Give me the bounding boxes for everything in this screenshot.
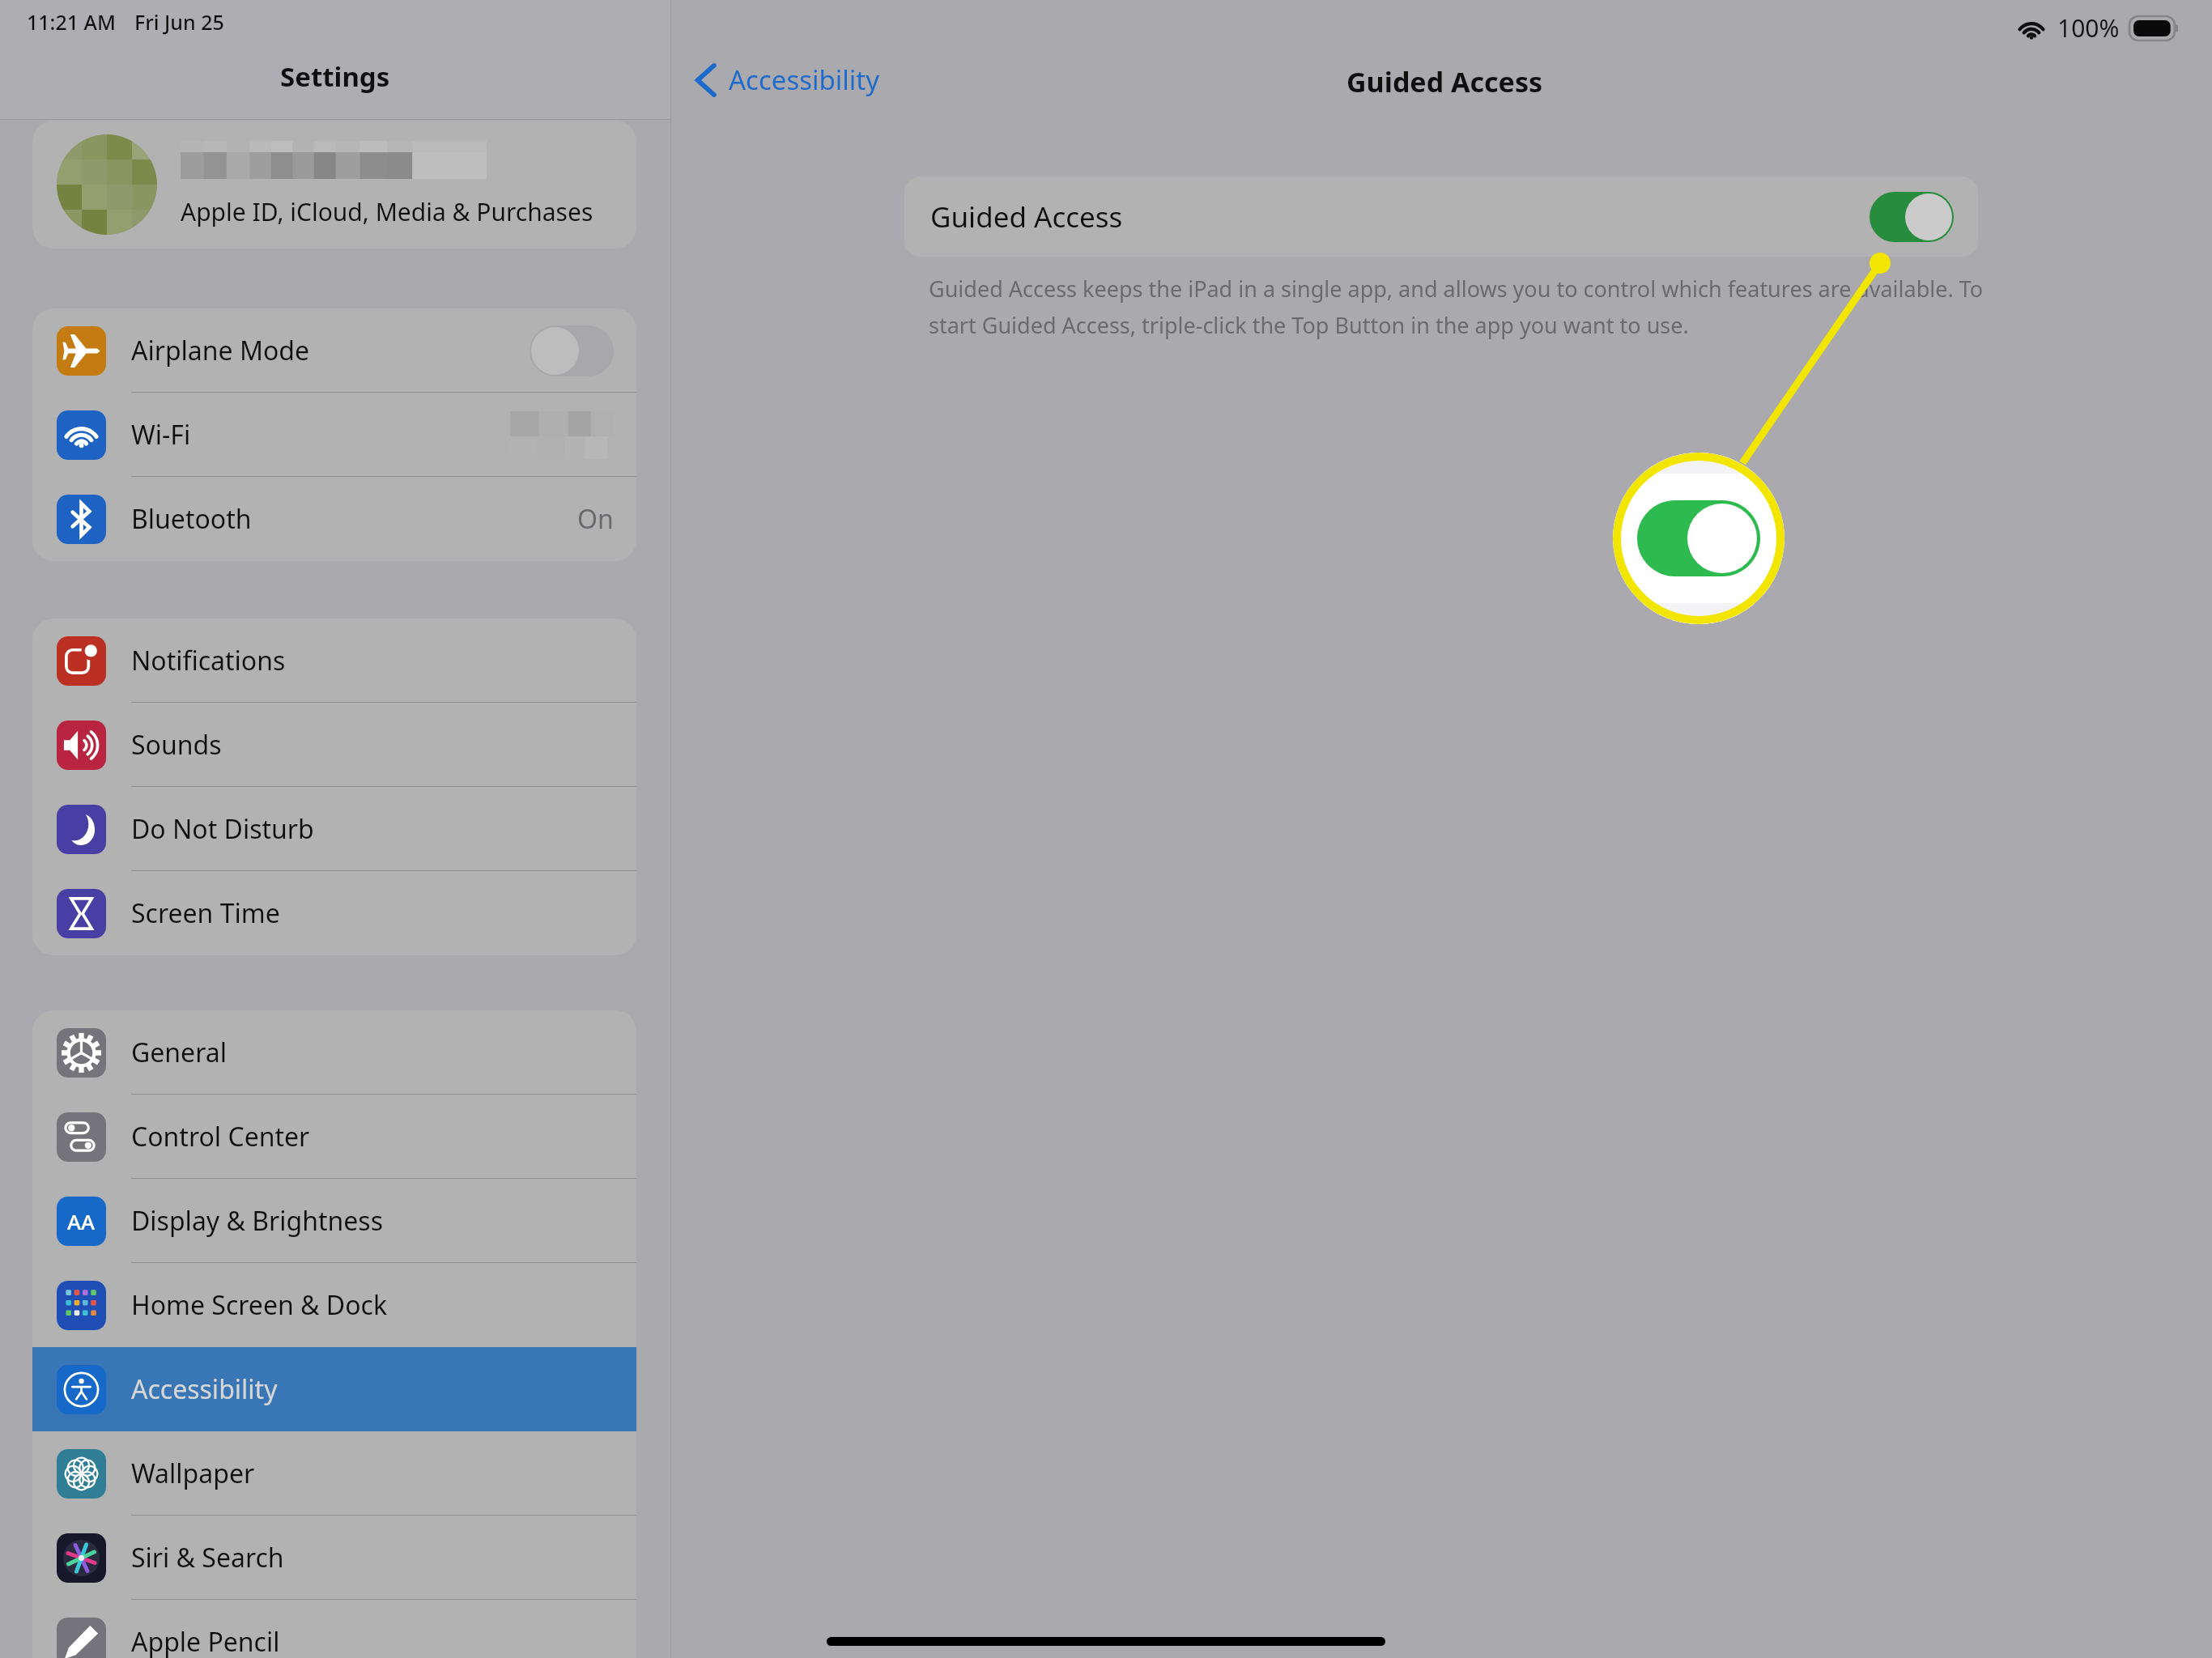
staticText: On xyxy=(577,501,614,537)
button[interactable]: Airplane Mode off xyxy=(530,325,614,376)
button[interactable]: Bluetooth xyxy=(32,477,636,561)
staticText: Accessibility xyxy=(729,62,880,98)
staticText: Apple ID, iCloud, Media & Purchases xyxy=(181,195,593,228)
button[interactable]: Control Center xyxy=(32,1095,636,1179)
staticText: Do Not Disturb xyxy=(131,811,314,847)
staticText: Sounds xyxy=(131,727,222,763)
button[interactable]: Wi-Fi xyxy=(32,393,636,477)
button[interactable]: Guided Access on xyxy=(1870,192,1954,242)
button[interactable]: Airplane Mode xyxy=(32,308,636,393)
button[interactable]: Apple Pencil xyxy=(32,1600,636,1658)
button[interactable]: Do Not Disturb xyxy=(32,787,636,871)
button[interactable]: Screen Time xyxy=(32,871,636,955)
other: Battery 100 percent xyxy=(2129,16,2180,40)
staticText: 11:21 AM xyxy=(27,8,116,36)
button[interactable]: Wallpaper xyxy=(32,1431,636,1516)
staticText: Settings xyxy=(280,58,390,95)
staticText: Control Center xyxy=(131,1119,310,1154)
staticText: AA xyxy=(67,1207,96,1235)
staticText: Home Screen & Dock xyxy=(131,1287,387,1323)
button[interactable]: AA xyxy=(32,1179,636,1263)
staticText: General xyxy=(131,1035,227,1070)
button[interactable]: Siri & Search xyxy=(32,1516,636,1600)
staticText: Screen Time xyxy=(131,895,280,931)
staticText: Wallpaper xyxy=(131,1456,255,1491)
button[interactable]: Apple ID, iCloud, Media & Purchases xyxy=(32,121,636,249)
button[interactable]: Accessibility xyxy=(32,1347,636,1431)
staticText: Fri Jun 25 xyxy=(134,8,224,36)
button[interactable]: Notifications xyxy=(32,619,636,703)
staticText: Wi-Fi xyxy=(131,417,191,453)
staticText: Airplane Mode xyxy=(131,333,310,368)
button[interactable]: Guided Access xyxy=(904,176,1978,257)
staticText: Guided Access keeps the iPad in a single… xyxy=(929,274,2006,340)
staticText: 100% xyxy=(2057,11,2120,45)
other: Wi-Fi xyxy=(2015,16,2048,40)
staticText: Siri & Search xyxy=(131,1540,284,1575)
staticText: Notifications xyxy=(131,643,286,678)
staticText: Accessibility xyxy=(131,1371,278,1407)
staticText: Guided Access xyxy=(1346,63,1543,100)
staticText: Display & Brightness xyxy=(131,1203,383,1239)
button[interactable]: Accessibility xyxy=(690,57,885,103)
button[interactable]: Sounds xyxy=(32,703,636,787)
button[interactable]: General xyxy=(32,1010,636,1095)
staticText: Guided Access xyxy=(930,198,1123,236)
staticText: Bluetooth xyxy=(131,501,252,537)
button[interactable]: Home Screen & Dock xyxy=(32,1263,636,1347)
staticText: Apple Pencil xyxy=(131,1624,280,1658)
